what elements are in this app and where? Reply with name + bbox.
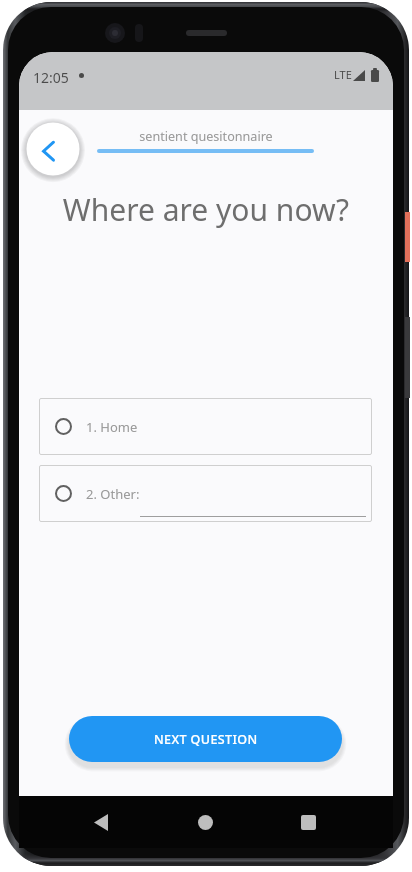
staticText: Where are you now? <box>19 189 393 230</box>
button[interactable]: Back <box>81 802 121 842</box>
staticText: LTE <box>334 67 352 82</box>
button[interactable]: Home <box>185 802 225 842</box>
staticText: 12:05 <box>33 68 69 87</box>
button[interactable]: Back <box>25 121 81 177</box>
button[interactable]: 1. Home <box>39 398 372 455</box>
staticText: sentient quesitonnaire <box>19 128 393 145</box>
staticText: NEXT QUESTION <box>154 731 258 748</box>
staticText: 2. Other: <box>86 485 140 503</box>
button[interactable]: NEXT QUESTION <box>69 716 342 762</box>
button[interactable]: 2. Other: <box>39 465 372 522</box>
button[interactable]: Recent apps <box>288 802 328 842</box>
staticText: 1. Home <box>86 418 138 436</box>
